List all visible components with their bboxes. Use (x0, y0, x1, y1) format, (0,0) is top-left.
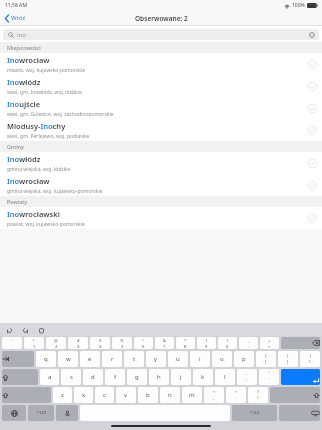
button[interactable]: Inowrocław (0, 174, 322, 196)
button[interactable]: Inoujście (0, 97, 322, 119)
button[interactable]: { (256, 351, 276, 367)
button[interactable]: Tab (2, 351, 34, 367)
button[interactable]: ~ (2, 337, 22, 349)
button[interactable]: l (215, 369, 235, 385)
button[interactable]: ) (218, 337, 237, 349)
staticText: ' (269, 377, 270, 383)
staticText: - (248, 344, 250, 348)
button[interactable]: w (58, 351, 78, 367)
staticText: Inowrocław (7, 176, 50, 186)
button[interactable]: d (83, 369, 103, 385)
staticText: 3 (77, 344, 80, 348)
button[interactable]: + (260, 337, 279, 349)
button[interactable]: h (149, 369, 169, 385)
staticText: w (66, 355, 71, 363)
staticText: > (235, 389, 238, 395)
button[interactable]: j (171, 369, 191, 385)
button[interactable]: t (124, 351, 144, 367)
button[interactable]: ^ (134, 337, 153, 349)
button[interactable]: c (95, 387, 114, 403)
button[interactable]: Hide keyboard (279, 405, 320, 421)
staticText: _ (248, 338, 250, 344)
button[interactable]: Caps lock (2, 369, 38, 385)
button[interactable]: i (190, 351, 210, 367)
button[interactable]: ? (248, 387, 268, 403)
button[interactable]: Dictate (56, 405, 78, 421)
button[interactable]: p (234, 351, 254, 367)
staticText: ino (17, 31, 26, 39)
button[interactable]: Mlodusy-Inochy (0, 119, 322, 141)
button[interactable]: Delete (281, 337, 320, 349)
button[interactable]: f (105, 369, 125, 385)
button[interactable]: $ (90, 337, 110, 349)
button[interactable]: < (204, 387, 224, 403)
button[interactable]: Change keyboard (2, 405, 26, 421)
button[interactable]: } (278, 351, 298, 367)
button[interactable]: _ (239, 337, 258, 349)
button[interactable]: @ (46, 337, 66, 349)
button[interactable]: k (193, 369, 213, 385)
button[interactable]: > (226, 387, 246, 403)
button[interactable]: Shift (2, 387, 51, 403)
button[interactable]: a (40, 369, 59, 385)
button[interactable]: y (146, 351, 166, 367)
button[interactable]: undo (5, 326, 13, 334)
button[interactable]: Clear search (308, 31, 315, 38)
button[interactable]: Obserwuj (307, 103, 317, 113)
staticText: gmina wiejska, woj. kujawsko-pomorskie (7, 188, 103, 195)
button[interactable]: Inowrocław (0, 53, 322, 75)
button[interactable]: e (80, 351, 100, 367)
staticText: . (235, 395, 237, 401)
button[interactable]: Inowrocławski (0, 207, 322, 229)
button[interactable]: Inowłódz (0, 152, 322, 174)
button[interactable]: | (300, 351, 320, 367)
staticText: < (213, 389, 216, 395)
button[interactable]: redo (21, 326, 29, 334)
staticText: 1 (33, 344, 36, 348)
button[interactable]: s (61, 369, 81, 385)
button[interactable]: " (259, 369, 279, 385)
button[interactable]: & (155, 337, 174, 349)
button[interactable]: % (112, 337, 132, 349)
button[interactable]: Obserwuj (307, 158, 317, 168)
button[interactable]: v (116, 387, 136, 403)
staticText: f (114, 373, 117, 381)
staticText: wieś, gm. Perlejewo, woj. podlaskie (7, 133, 90, 140)
button[interactable]: q (36, 351, 56, 367)
button[interactable]: Inowłódz (0, 75, 322, 97)
button[interactable]: o (212, 351, 232, 367)
staticText: 8 (184, 344, 187, 348)
button[interactable]: z (53, 387, 72, 403)
button[interactable]: x (74, 387, 93, 403)
button[interactable]: g (127, 369, 147, 385)
staticText: Obserwowane: 2 (135, 14, 188, 23)
button[interactable]: Wróć (4, 13, 27, 23)
button[interactable]: Obserwuj (307, 213, 317, 223)
staticText: Inowłódz (7, 154, 41, 164)
button[interactable]: Obserwuj (307, 180, 317, 190)
button[interactable]: Shift (270, 387, 320, 403)
button[interactable]: Return (281, 369, 320, 385)
button[interactable]: b (138, 387, 158, 403)
button[interactable]: .?123 (28, 405, 54, 421)
button[interactable]: r (102, 351, 122, 367)
button[interactable]: n (160, 387, 180, 403)
button[interactable]: ( (197, 337, 216, 349)
staticText: Mlodusy-Inochy (7, 121, 66, 131)
button[interactable]: Obserwuj (307, 125, 317, 135)
button[interactable]: ino (3, 29, 319, 40)
button[interactable]: u (168, 351, 188, 367)
button[interactable]: m (182, 387, 202, 403)
staticText: Gminy (7, 143, 24, 150)
button[interactable]: Obserwuj (307, 81, 317, 91)
button[interactable]: .?123 (232, 405, 277, 421)
button[interactable]: : (237, 369, 257, 385)
button[interactable]: ! (24, 337, 44, 349)
button[interactable]: # (68, 337, 88, 349)
button[interactable]: * (176, 337, 195, 349)
staticText: powiat, woj. kujawsko-pomorskie (7, 221, 85, 228)
button[interactable]: Obserwuj (307, 59, 317, 69)
staticText: ] (287, 359, 289, 365)
button[interactable]: paste (37, 326, 45, 334)
